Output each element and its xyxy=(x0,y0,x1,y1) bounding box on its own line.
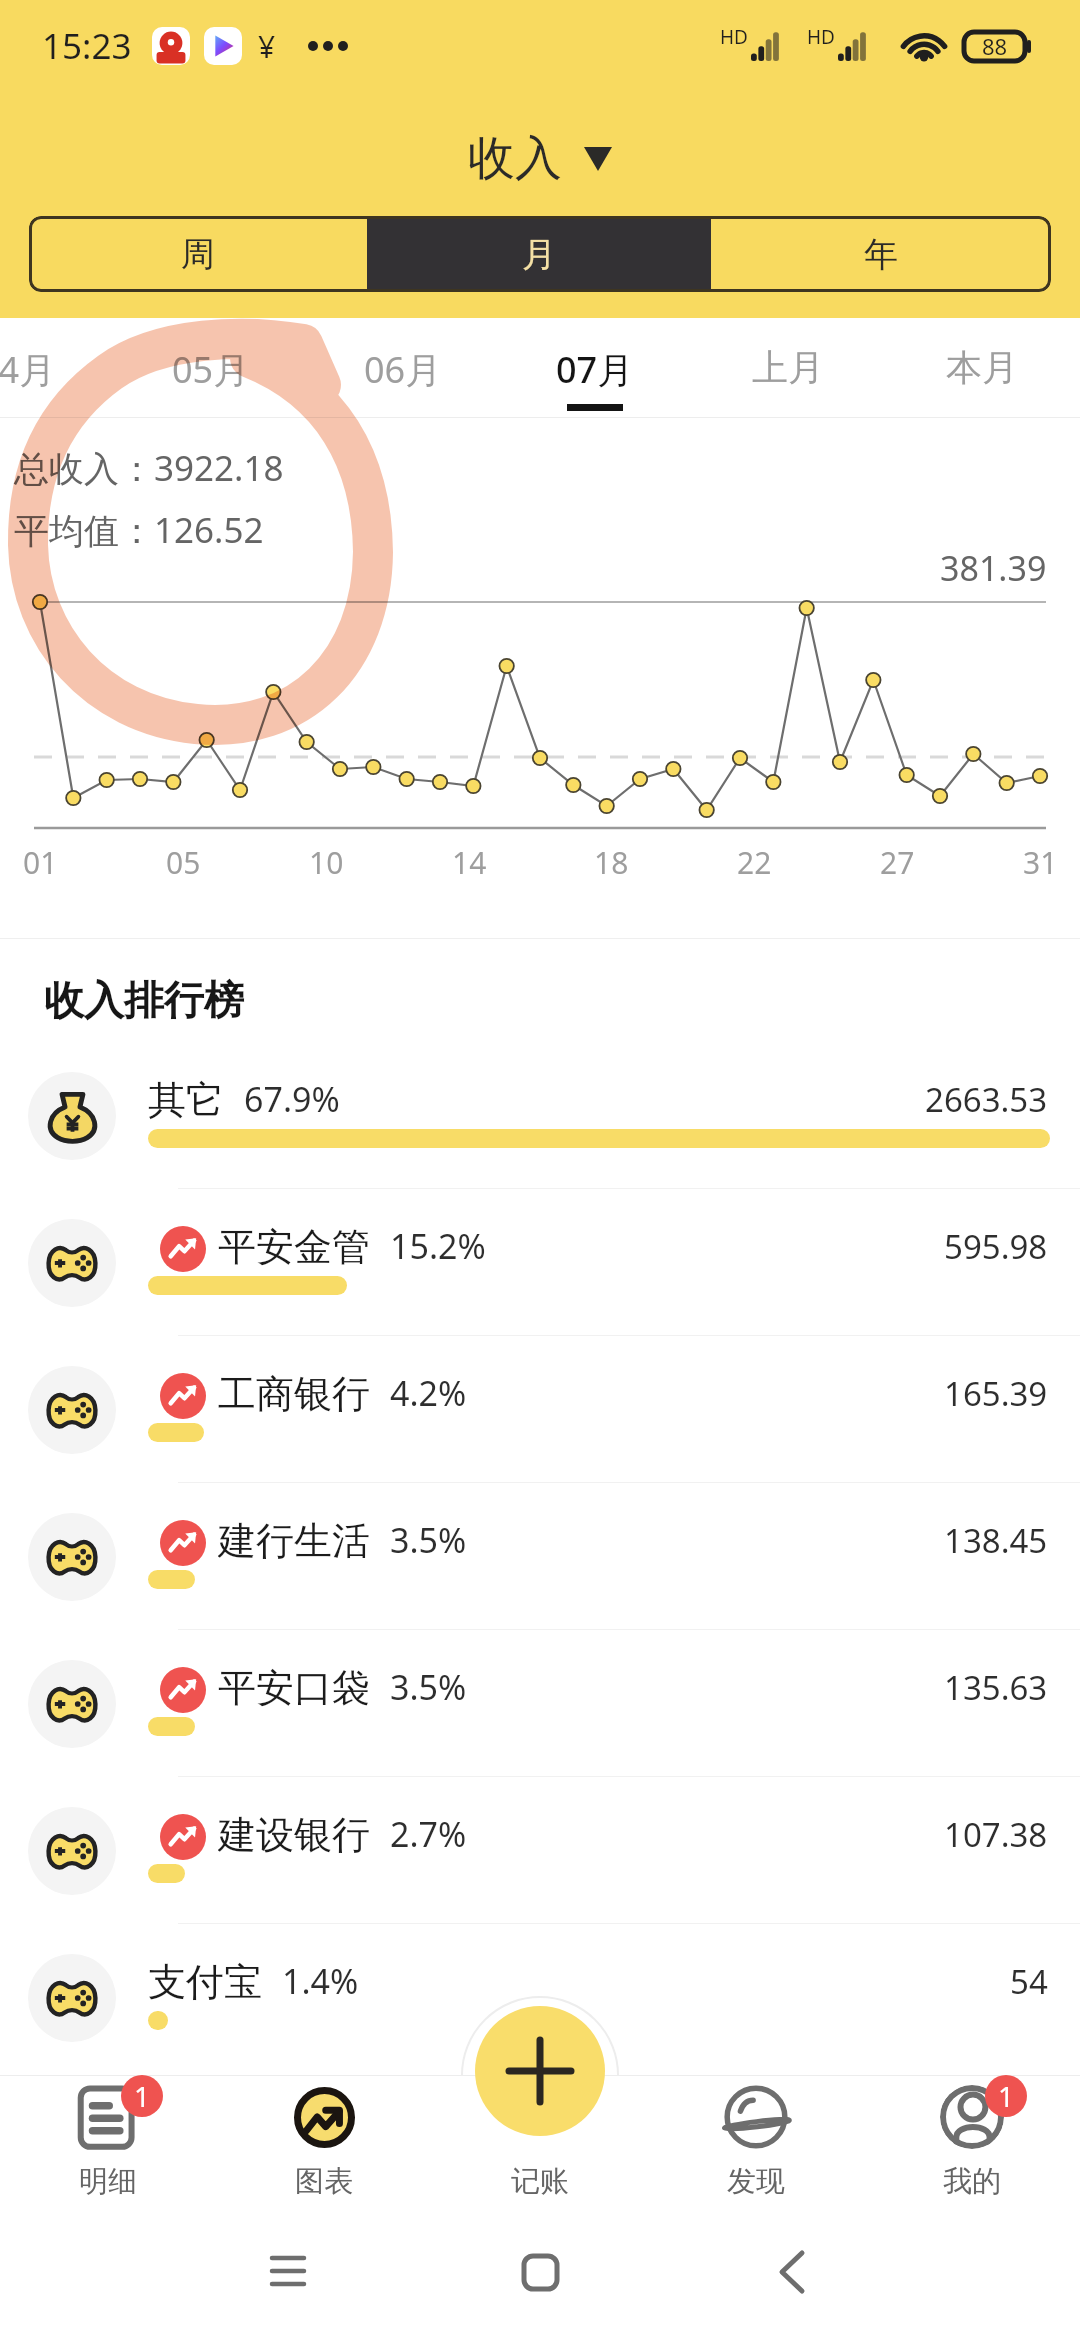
staticText: 04月 xyxy=(0,345,56,394)
staticText: 1.4% xyxy=(282,1958,359,2004)
staticText: 15.2% xyxy=(390,1223,486,1269)
staticText: 2.7% xyxy=(390,1811,467,1857)
staticText: 595.98 xyxy=(944,1224,1048,1269)
button[interactable]: 本月 xyxy=(892,318,1072,418)
staticText: 总收入：3922.18 xyxy=(14,444,284,492)
button[interactable]: 建行生活 xyxy=(0,1484,1080,1631)
staticText: 平安口袋 xyxy=(218,1664,370,1710)
button[interactable]: 上月 xyxy=(698,318,878,418)
staticText: 年 xyxy=(864,233,898,276)
staticText: 周 xyxy=(181,233,215,276)
staticText: 建行生活 xyxy=(218,1517,370,1563)
button[interactable]: 06月 xyxy=(313,318,493,418)
staticText: 88 xyxy=(982,31,1008,61)
button[interactable]: 明细 xyxy=(0,2075,216,2232)
button[interactable]: 图表 xyxy=(216,2075,432,2232)
staticText: 其它 xyxy=(148,1076,224,1122)
staticText: 收入排行榜 xyxy=(44,975,244,1025)
button[interactable]: 我的 xyxy=(864,2075,1080,2232)
staticText: HD xyxy=(720,24,748,50)
staticText: 67.9% xyxy=(244,1076,340,1122)
button[interactable]: 月 xyxy=(367,216,711,292)
button[interactable]: 07月 xyxy=(505,318,685,418)
staticText: 工商银行 xyxy=(218,1370,370,1416)
staticText: ¥ xyxy=(258,26,276,67)
staticText: 平均值：126.52 xyxy=(14,506,264,554)
button[interactable]: 记账 xyxy=(432,2075,648,2232)
staticText: 1 xyxy=(134,2077,151,2115)
staticText: 10 xyxy=(309,842,344,883)
button[interactable]: 支付宝 xyxy=(0,1925,1080,2072)
staticText: 14 xyxy=(452,842,487,883)
staticText: 18 xyxy=(594,842,629,883)
staticText: 138.45 xyxy=(944,1518,1048,1563)
other: 主页 xyxy=(524,2256,557,2289)
button[interactable]: 平安口袋 xyxy=(0,1631,1080,1778)
staticText: 05月 xyxy=(172,345,250,394)
staticText: 54 xyxy=(1010,1959,1048,2004)
staticText: 15:23 xyxy=(42,22,132,70)
staticText: 2663.53 xyxy=(925,1077,1048,1122)
button[interactable]: 周 xyxy=(29,216,367,292)
staticText: 165.39 xyxy=(944,1371,1048,1416)
staticText: 3.5% xyxy=(390,1517,467,1563)
button[interactable]: 其它 xyxy=(0,1043,1080,1190)
staticText: 明细 xyxy=(79,2163,137,2200)
staticText: 本月 xyxy=(946,345,1018,390)
button[interactable]: 平安金管 xyxy=(0,1190,1080,1337)
staticText: 上月 xyxy=(752,345,824,390)
staticText: 平安金管 xyxy=(218,1223,370,1269)
staticText: 1 xyxy=(998,2077,1015,2115)
button[interactable]: 05月 xyxy=(121,318,301,418)
staticText: 建设银行 xyxy=(218,1811,370,1857)
button[interactable]: 04月 xyxy=(0,318,107,418)
staticText: 收入 xyxy=(468,129,562,188)
staticText: 3.5% xyxy=(390,1664,467,1710)
button[interactable]: 返回 xyxy=(720,2232,864,2340)
staticText: 发现 xyxy=(727,2163,785,2200)
staticText: HD xyxy=(807,24,835,50)
button[interactable]: 发现 xyxy=(648,2075,864,2232)
staticText: 支付宝 xyxy=(148,1958,262,2004)
button[interactable]: 工商银行 xyxy=(0,1337,1080,1484)
staticText: 135.63 xyxy=(944,1665,1048,1710)
button[interactable]: 记账 添加 xyxy=(475,2006,605,2136)
other: 最近任务 xyxy=(272,2258,304,2284)
staticText: 01 xyxy=(23,842,58,883)
other: 返回 xyxy=(782,2253,802,2291)
button[interactable]: 收入 xyxy=(458,125,622,192)
staticText: 22 xyxy=(737,842,772,883)
staticText: 381.39 xyxy=(940,545,1047,591)
staticText: 4.2% xyxy=(390,1370,467,1416)
staticText: 06月 xyxy=(364,345,442,394)
button[interactable]: 最近任务 xyxy=(216,2232,360,2340)
button[interactable]: 建设银行 xyxy=(0,1778,1080,1925)
staticText: 我的 xyxy=(943,2163,1001,2200)
staticText: 记账 xyxy=(511,2163,569,2200)
staticText: 07月 xyxy=(556,345,634,394)
staticText: 图表 xyxy=(295,2163,353,2200)
staticText: 05 xyxy=(166,842,201,883)
staticText: 27 xyxy=(880,842,915,883)
button[interactable]: 主页 xyxy=(468,2232,612,2340)
staticText: 月 xyxy=(522,233,556,276)
button[interactable]: 年 xyxy=(711,216,1051,292)
staticText: 107.38 xyxy=(944,1812,1048,1857)
staticText: 31 xyxy=(1023,842,1058,883)
